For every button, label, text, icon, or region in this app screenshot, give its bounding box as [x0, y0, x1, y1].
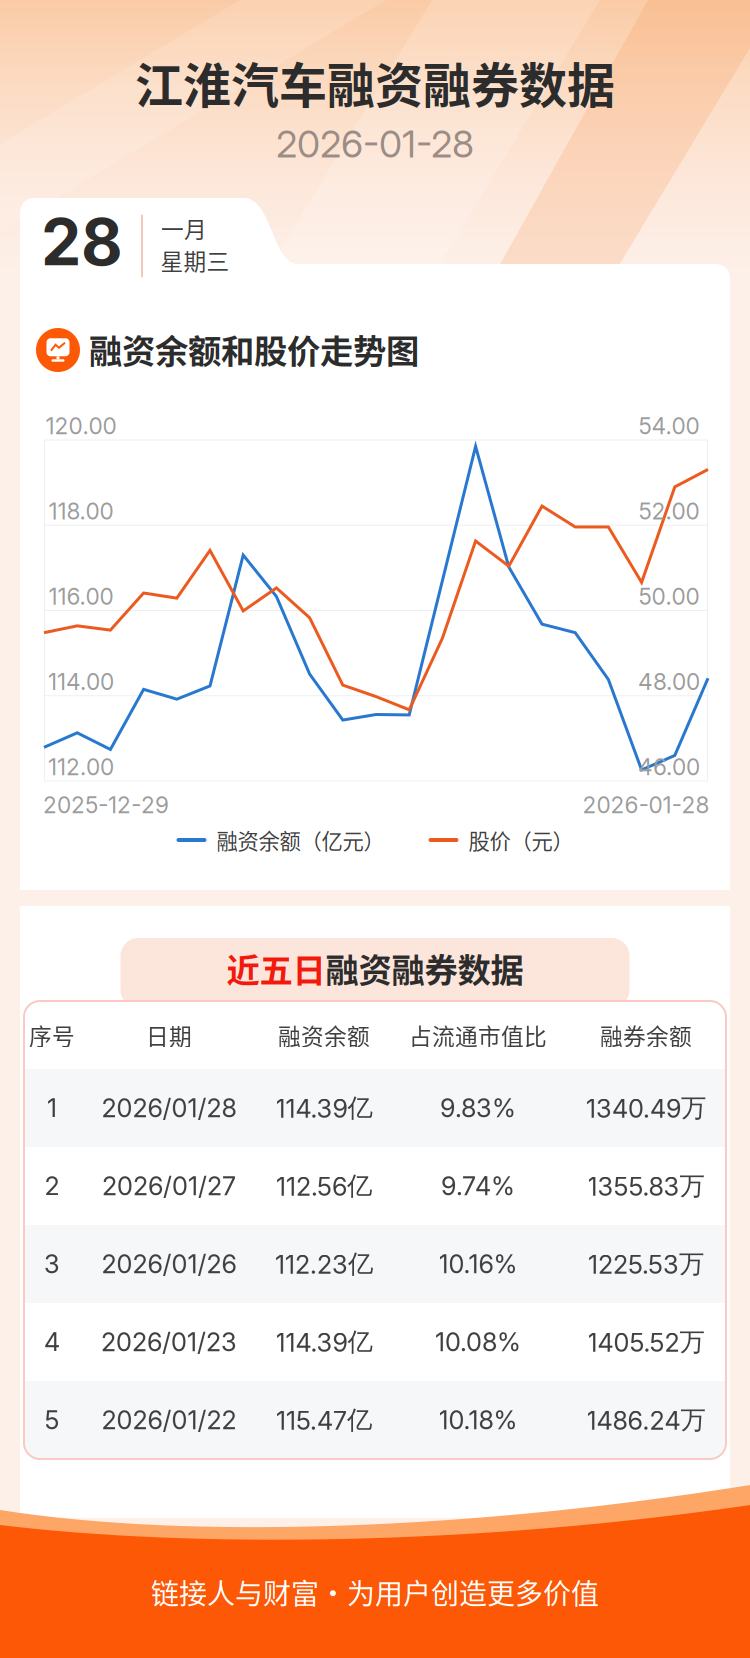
- staticText: 115.47亿: [276, 1404, 372, 1436]
- staticText: 融资余额: [278, 1019, 370, 1051]
- staticText: 5: [44, 1405, 59, 1435]
- staticText: 1355.83万: [587, 1170, 704, 1202]
- staticText: 日期: [146, 1019, 192, 1051]
- staticText: 一月: [161, 212, 207, 244]
- staticText: 2026/01/22: [101, 1405, 236, 1435]
- staticText: 120.00: [45, 412, 116, 440]
- staticText: 2026/01/27: [102, 1171, 236, 1201]
- staticText: 10.16%: [438, 1249, 517, 1279]
- staticText: 1405.52万: [587, 1326, 704, 1358]
- staticText: 近五日: [226, 944, 325, 992]
- staticText: 融资余额和股价走势图: [89, 325, 419, 373]
- staticText: 融资融券数据: [325, 944, 523, 992]
- staticText: 114.00: [48, 668, 114, 695]
- staticText: 112.00: [48, 753, 114, 781]
- staticText: 46.00: [638, 753, 700, 781]
- staticText: 序号: [29, 1019, 75, 1051]
- staticText: 118.00: [48, 497, 113, 525]
- staticText: 112.56亿: [276, 1170, 372, 1202]
- staticText: 2025-12-29: [43, 791, 169, 819]
- staticText: 2026-01-28: [582, 791, 709, 819]
- staticText: 2026-01-28: [276, 121, 474, 167]
- staticText: 融资余额（亿元）: [216, 825, 384, 855]
- staticText: 114.39亿: [275, 1092, 372, 1124]
- staticText: 股价（元）: [468, 825, 573, 855]
- staticText: 3: [44, 1249, 60, 1279]
- staticText: 2026/01/23: [101, 1327, 237, 1357]
- staticText: 114.39亿: [275, 1326, 372, 1358]
- staticText: 10.18%: [438, 1405, 517, 1435]
- staticText: 50.00: [638, 583, 699, 610]
- staticText: 2: [44, 1171, 59, 1201]
- staticText: 54.00: [638, 412, 699, 440]
- staticText: 48.00: [638, 668, 700, 695]
- staticText: 112.23亿: [275, 1248, 373, 1280]
- staticText: 9.83%: [440, 1093, 516, 1123]
- staticText: 1486.24万: [586, 1404, 705, 1436]
- staticText: 星期三: [160, 244, 229, 276]
- staticText: 2026/01/28: [101, 1093, 236, 1123]
- staticText: 江淮汽车融资融券数据: [135, 47, 615, 117]
- staticText: 116.00: [48, 583, 113, 610]
- staticText: 2026/01/26: [101, 1249, 236, 1279]
- staticText: 28: [41, 203, 123, 281]
- staticText: 融券余额: [600, 1019, 692, 1051]
- staticText: 9.74%: [441, 1171, 515, 1201]
- staticText: 链接人与财富·为用户创造更多价值: [151, 1572, 599, 1612]
- staticText: 1340.49万: [586, 1092, 706, 1124]
- staticText: 10.08%: [435, 1327, 521, 1357]
- staticText: 52.00: [638, 497, 699, 525]
- staticText: 1: [47, 1093, 57, 1123]
- staticText: 1225.53万: [588, 1248, 704, 1280]
- staticText: 4: [44, 1327, 60, 1357]
- staticText: 占流通市值比: [409, 1019, 547, 1051]
